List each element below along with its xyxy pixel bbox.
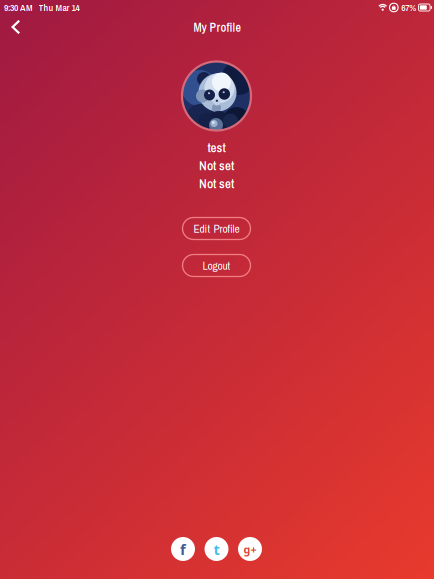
staticText: t	[213, 540, 219, 559]
staticText: test	[207, 139, 225, 156]
button[interactable]: Twitter	[204, 537, 228, 561]
staticText: Not set	[199, 157, 234, 174]
button[interactable]: Google Plus	[238, 537, 262, 561]
button[interactable]: Facebook	[171, 537, 195, 561]
staticText: Logout	[202, 258, 230, 273]
staticText: My Profile	[193, 19, 240, 36]
staticText: 9:30 AM	[4, 1, 33, 14]
staticText: Thu Mar 14	[38, 1, 79, 14]
staticText: Edit Profile	[193, 221, 239, 236]
button[interactable]: Back	[0, 11, 33, 43]
staticText: f	[180, 540, 186, 559]
button[interactable]: Logout	[182, 254, 250, 276]
button[interactable]: Edit Profile	[182, 217, 250, 239]
staticText: g+	[243, 542, 256, 556]
staticText: 67%	[401, 1, 416, 14]
staticText: Not set	[199, 175, 234, 192]
